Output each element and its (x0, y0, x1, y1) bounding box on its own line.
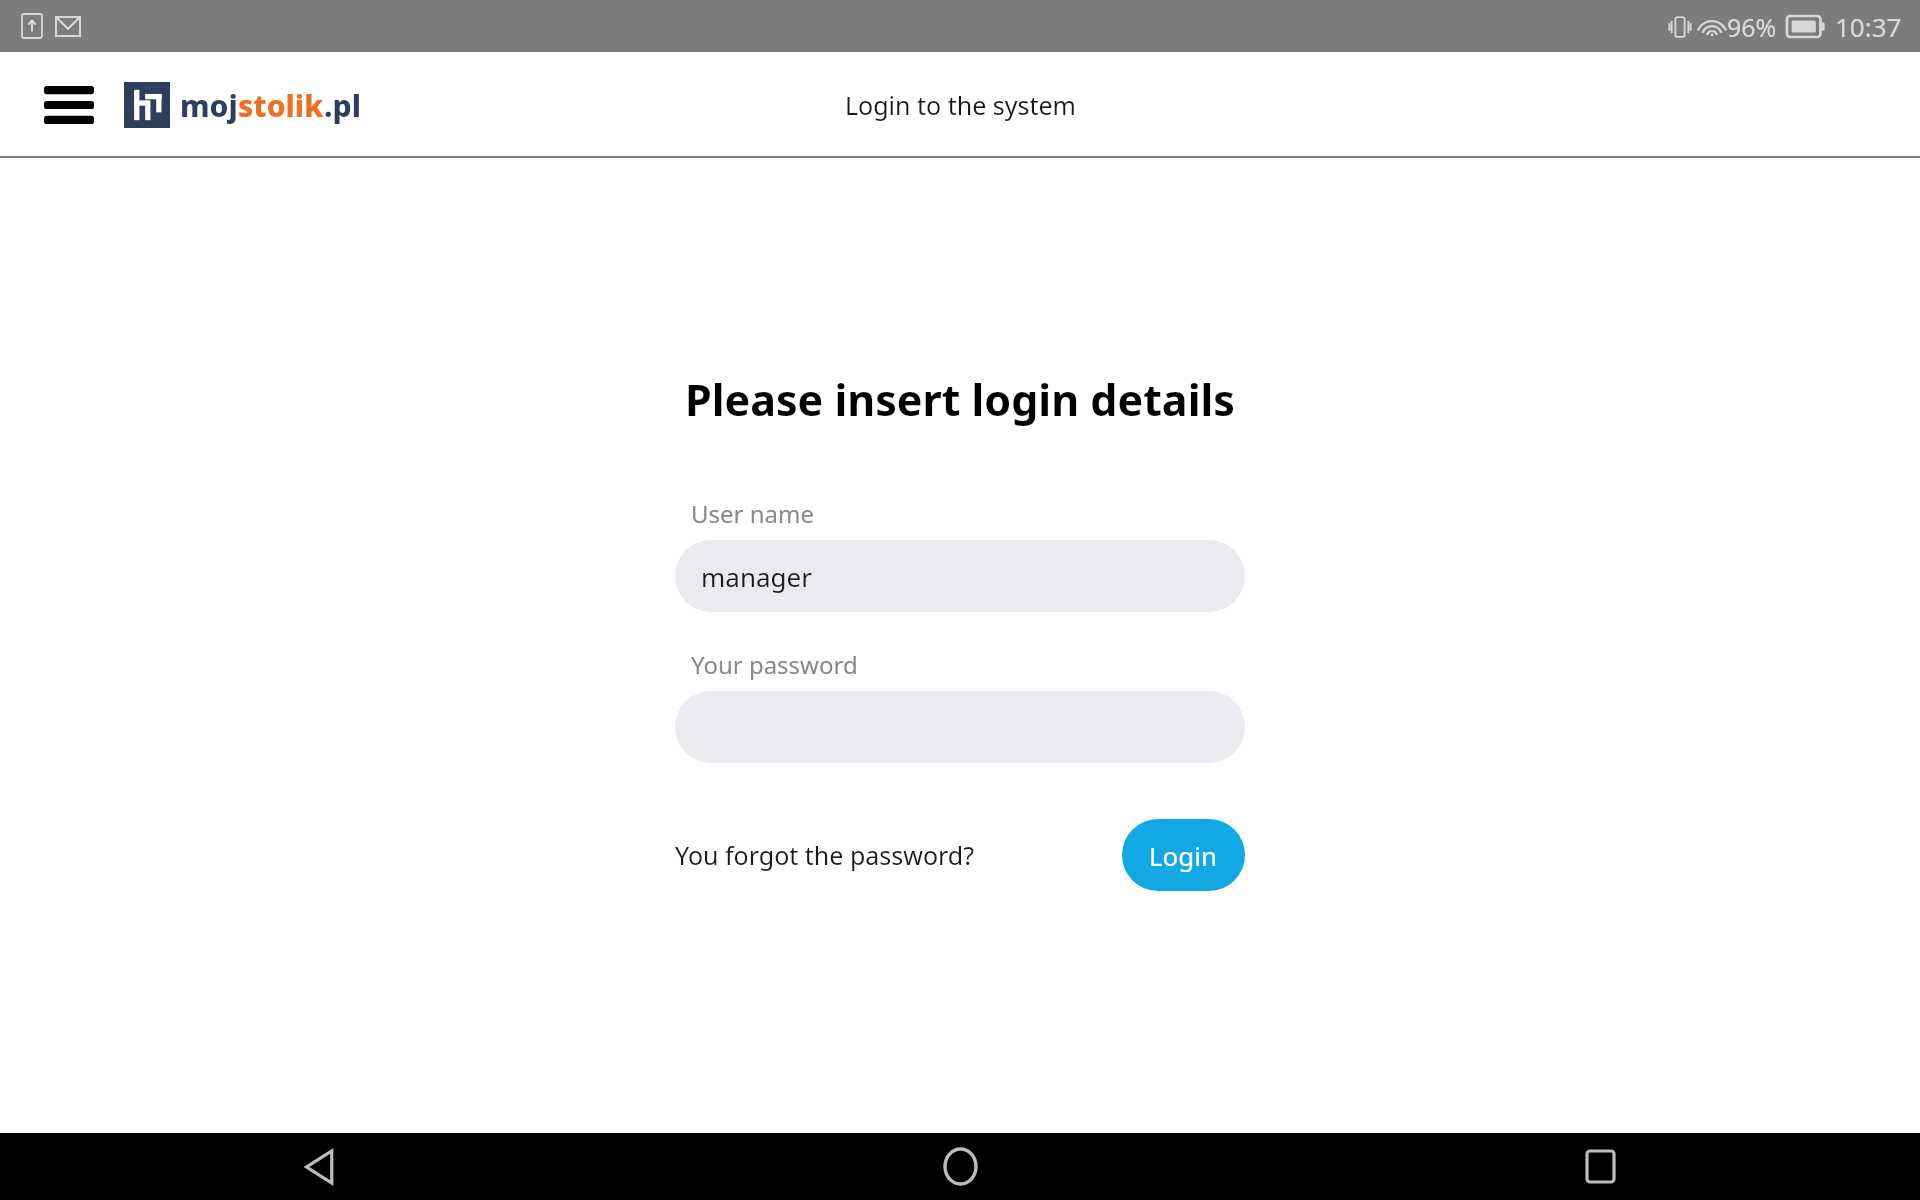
staticText: 10:37 (1835, 9, 1902, 44)
button[interactable]: Login (1122, 819, 1245, 891)
button[interactable]: Home (924, 1133, 996, 1200)
button[interactable] (675, 691, 1245, 763)
staticText: Login (1149, 838, 1218, 873)
staticText: moj (180, 85, 238, 126)
staticText: You forgot the password? (675, 838, 975, 872)
staticText: Your password (691, 648, 858, 681)
staticText: User name (691, 497, 814, 530)
button[interactable]: Recent apps (1564, 1133, 1636, 1200)
staticText: Please insert login details (685, 370, 1235, 429)
staticText: stolik (238, 85, 324, 126)
staticText: Login to the system (845, 88, 1076, 122)
button[interactable]: Open navigation menu (40, 76, 98, 134)
button[interactable]: You forgot the password? (675, 830, 975, 880)
staticText: .pl (324, 85, 361, 126)
staticText: manager (701, 559, 812, 594)
button[interactable]: manager (675, 540, 1245, 612)
staticText: 96% (1727, 10, 1777, 44)
button[interactable]: Back (284, 1133, 356, 1200)
